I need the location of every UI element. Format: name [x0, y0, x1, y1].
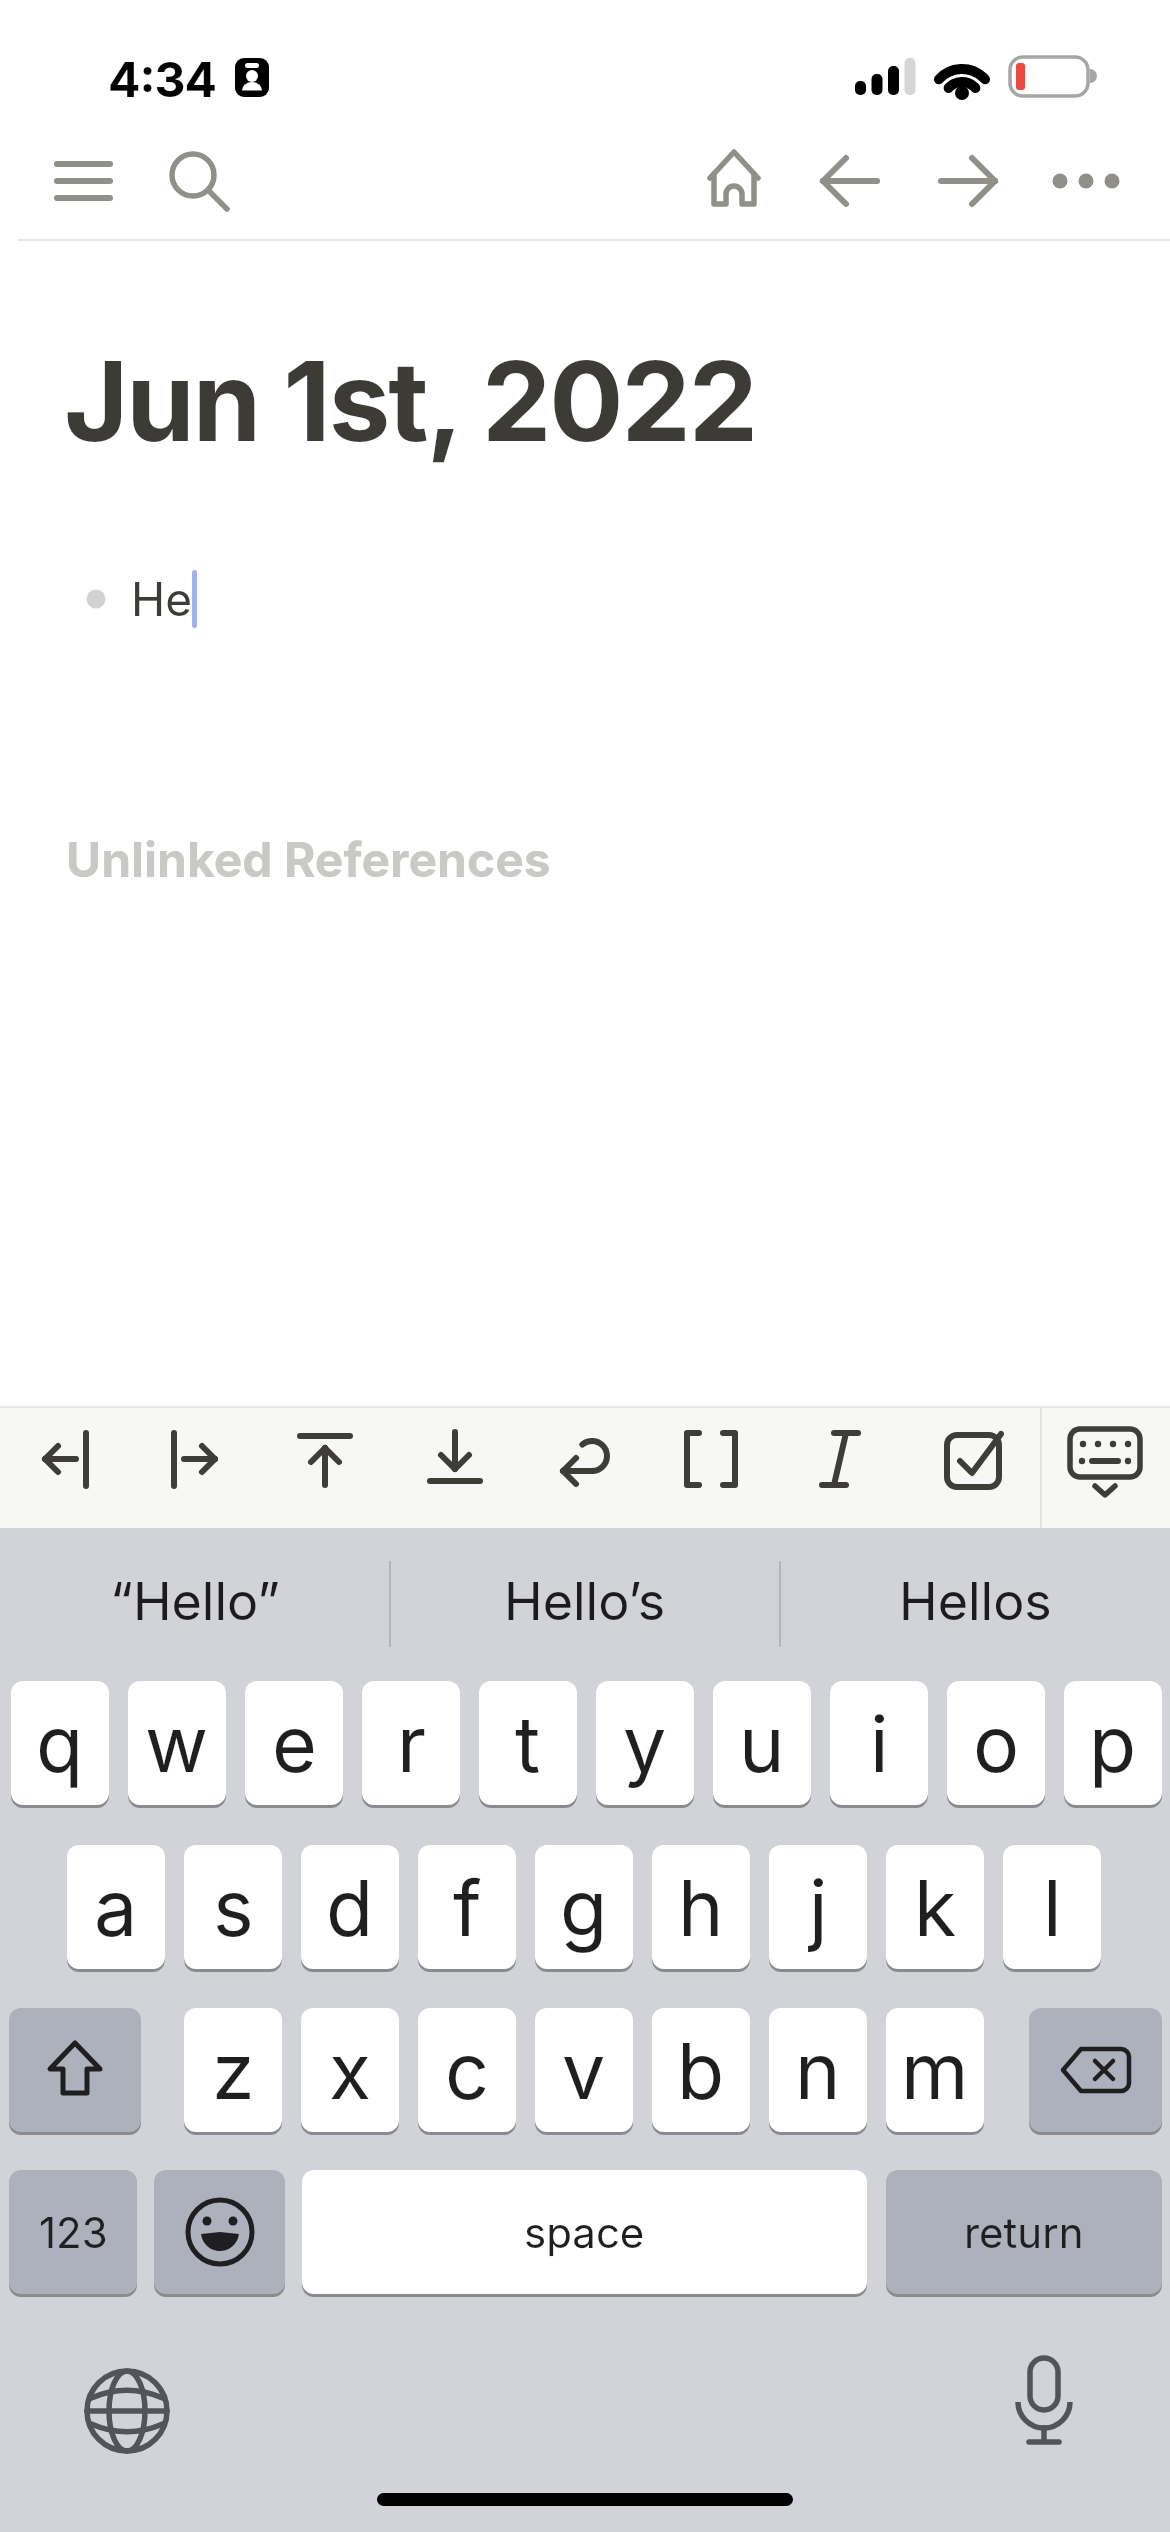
button[interactable] [927, 1413, 1019, 1505]
button[interactable]: a [67, 1845, 165, 1969]
button[interactable]: d [301, 1845, 399, 1969]
staticText: e [272, 1697, 317, 1790]
staticText: a [94, 1861, 138, 1954]
button[interactable]: p [1064, 1681, 1162, 1805]
button[interactable]: y [596, 1681, 694, 1805]
button[interactable] [692, 140, 778, 222]
staticText: g [560, 1861, 608, 1954]
button[interactable] [1059, 1413, 1151, 1505]
button[interactable] [794, 1413, 886, 1505]
button[interactable]: x [301, 2008, 399, 2132]
button[interactable]: e [245, 1681, 343, 1805]
button[interactable]: n [769, 2008, 867, 2132]
staticText: o [973, 1697, 1020, 1790]
button[interactable]: z [184, 2008, 282, 2132]
button[interactable]: q [11, 1681, 109, 1805]
staticText: l [1043, 1861, 1062, 1954]
button[interactable]: s [184, 1845, 282, 1969]
button[interactable] [19, 1413, 111, 1505]
staticText: space [524, 2207, 645, 2258]
button[interactable] [409, 1413, 501, 1505]
staticText: m [901, 2024, 969, 2117]
button[interactable] [539, 1413, 631, 1505]
staticText: Hellos [899, 1570, 1052, 1633]
button[interactable]: u [713, 1681, 811, 1805]
button[interactable]: c [418, 2008, 516, 2132]
staticText: u [739, 1697, 785, 1790]
button[interactable] [9, 2008, 141, 2132]
staticText: t [515, 1697, 541, 1790]
button[interactable]: i [830, 1681, 928, 1805]
staticText: w [145, 1697, 209, 1790]
button[interactable]: r [362, 1681, 460, 1805]
button[interactable]: o [947, 1681, 1045, 1805]
button[interactable] [665, 1413, 757, 1505]
button[interactable] [1040, 140, 1136, 222]
staticText: q [36, 1697, 84, 1790]
button[interactable]: l [1003, 1845, 1101, 1969]
staticText: v [562, 2024, 606, 2117]
button[interactable] [77, 2361, 177, 2461]
button[interactable]: 123 [9, 2170, 137, 2294]
button[interactable]: v [535, 2008, 633, 2132]
staticText: Hello’s [504, 1570, 666, 1633]
button[interactable]: h [652, 1845, 750, 1969]
staticText: He [131, 571, 193, 627]
button[interactable] [152, 140, 240, 222]
staticText: p [1089, 1697, 1137, 1790]
button[interactable]: He [70, 555, 770, 645]
button[interactable]: f [418, 1845, 516, 1969]
button[interactable] [994, 2350, 1094, 2450]
staticText: i [870, 1697, 889, 1790]
button[interactable]: w [128, 1681, 226, 1805]
button[interactable]: m [886, 2008, 984, 2132]
staticText: y [623, 1697, 667, 1790]
staticText: 4:34 [108, 50, 216, 108]
staticText: s [213, 1861, 254, 1954]
staticText: “Hello” [110, 1570, 280, 1633]
button[interactable]: Hello’s [400, 1545, 770, 1657]
button[interactable]: g [535, 1845, 633, 1969]
staticText: 123 [39, 2207, 108, 2258]
staticText: Jun 1st, 2022 [64, 334, 757, 467]
button[interactable] [279, 1413, 371, 1505]
button[interactable]: t [479, 1681, 577, 1805]
button[interactable]: Hellos [790, 1545, 1160, 1657]
button[interactable]: space [302, 2170, 867, 2294]
button[interactable]: b [652, 2008, 750, 2132]
staticText: k [914, 1861, 957, 1954]
button[interactable]: j [769, 1845, 867, 1969]
staticText: j [809, 1861, 828, 1954]
button[interactable] [924, 140, 1012, 222]
button[interactable] [149, 1413, 241, 1505]
button[interactable]: return [886, 2170, 1162, 2294]
staticText: h [678, 1861, 724, 1954]
staticText: d [326, 1861, 374, 1954]
button[interactable]: k [886, 1845, 984, 1969]
button[interactable] [40, 140, 128, 222]
staticText: f [453, 1861, 482, 1954]
staticText: c [445, 2024, 489, 2117]
button[interactable] [806, 140, 894, 222]
staticText: r [397, 1697, 426, 1790]
staticText: Unlinked References [66, 830, 551, 888]
staticText: n [795, 2024, 841, 2117]
staticText: return [964, 2207, 1084, 2258]
staticText: b [677, 2024, 725, 2117]
button[interactable] [1029, 2008, 1162, 2132]
button[interactable] [154, 2170, 285, 2294]
staticText: z [212, 2024, 255, 2117]
staticText: x [329, 2024, 372, 2117]
button[interactable]: “Hello” [10, 1545, 380, 1657]
